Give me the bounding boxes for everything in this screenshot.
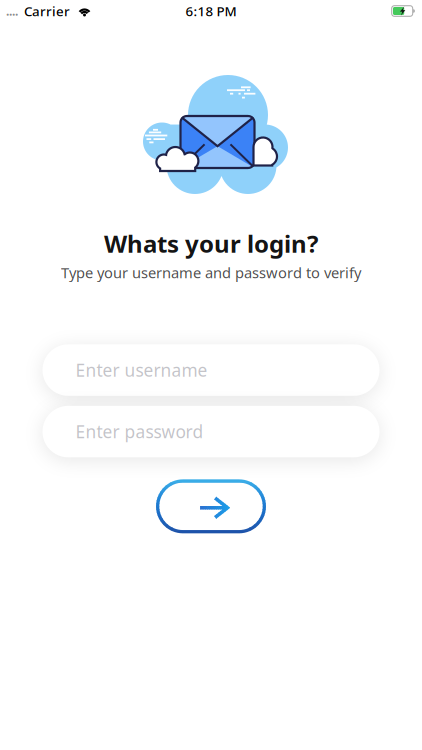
button[interactable]: Continue	[156, 479, 266, 533]
staticText: Carrier	[24, 2, 70, 20]
staticText: 6:18 PM	[185, 2, 236, 20]
staticText: Whats your login?	[104, 227, 318, 259]
staticText: Type your username and password to verif…	[61, 263, 361, 282]
staticText: ....	[6, 3, 18, 19]
staticText: Enter password	[75, 420, 203, 443]
staticText: Enter username	[75, 359, 207, 382]
button[interactable]: Enter username	[42, 344, 379, 396]
button[interactable]: Enter password	[42, 406, 379, 457]
